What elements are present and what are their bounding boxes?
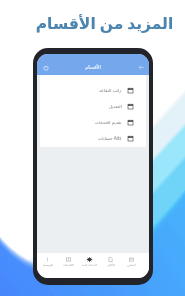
staticText: راتب التقاعد: [99, 87, 122, 93]
button[interactable]: الأخبار: [100, 257, 121, 266]
button[interactable]: Back: [137, 63, 146, 72]
staticText: الخدمات: [63, 263, 74, 266]
staticText: حسابي: [127, 263, 136, 266]
button[interactable]: حسابي: [121, 257, 142, 266]
staticText: الرئيسية: [43, 263, 53, 266]
staticText: تقديم الخدمات: [95, 119, 122, 125]
staticText: حسابات Ads: [98, 135, 122, 141]
staticText: المزيد من الأقسام: [24, 12, 185, 33]
button[interactable]: التعديل: [40, 98, 146, 114]
staticText: التعديل: [109, 104, 122, 109]
button[interactable]: راتب التقاعد: [40, 82, 146, 98]
button[interactable]: حسابات Ads: [40, 130, 146, 146]
button[interactable]: الرئيسية: [37, 257, 58, 266]
staticText: الأخبار: [107, 263, 115, 266]
button[interactable]: خدمات عامة: [79, 257, 100, 267]
button[interactable]: Menu: [41, 63, 50, 72]
staticText: خدمات عامة: [82, 263, 97, 267]
staticText: الأقسام: [85, 64, 101, 70]
button[interactable]: الخدمات: [58, 257, 79, 266]
button[interactable]: تقديم الخدمات: [40, 114, 146, 130]
